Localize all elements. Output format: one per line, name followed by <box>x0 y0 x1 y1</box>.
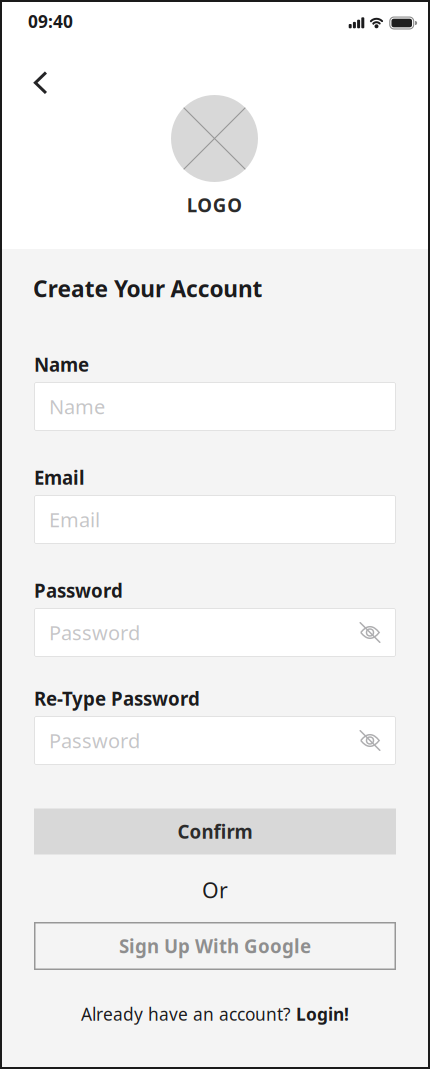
staticText: Confirm <box>177 819 252 844</box>
staticText: Email <box>49 506 100 533</box>
staticText: LOGO <box>187 193 242 217</box>
staticText: Email <box>34 465 85 490</box>
button[interactable]: Show password <box>359 616 396 648</box>
staticText: Password <box>49 619 140 646</box>
staticText: Name <box>49 393 105 420</box>
staticText: Name <box>34 352 89 377</box>
button[interactable]: Already have an account? <box>55 1002 375 1026</box>
staticText: Re-Type Password <box>34 686 200 711</box>
staticText: Already have an account? <box>81 1002 296 1025</box>
staticText: Sign Up With Google <box>119 934 311 958</box>
button[interactable]: Confirm <box>34 808 396 854</box>
staticText: 09:40 <box>28 10 73 33</box>
button[interactable]: Sign Up With Google <box>34 922 396 970</box>
staticText: Or <box>202 876 228 904</box>
staticText: Create Your Account <box>33 273 263 303</box>
staticText: Login! <box>296 1002 349 1025</box>
button[interactable]: Back <box>18 61 62 105</box>
staticText: Password <box>34 578 123 603</box>
staticText: Password <box>49 727 140 754</box>
button[interactable]: Show password <box>359 724 396 756</box>
